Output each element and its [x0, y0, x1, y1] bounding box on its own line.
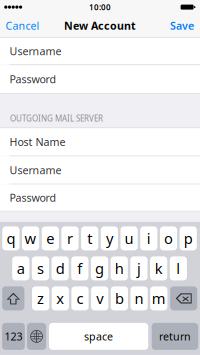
staticText: t — [87, 229, 92, 248]
button[interactable]: o — [160, 226, 177, 250]
staticText: p — [184, 229, 193, 248]
staticText: Username — [9, 44, 61, 58]
button[interactable]: Save — [164, 15, 200, 37]
staticText: i — [147, 229, 151, 248]
staticText: Host Name — [9, 135, 65, 149]
staticText: d — [56, 259, 65, 278]
button[interactable]: h — [111, 256, 128, 280]
button[interactable]: Delete — [170, 286, 197, 310]
button[interactable]: l — [170, 256, 187, 280]
button[interactable]: q — [2, 226, 19, 250]
staticText: j — [137, 259, 141, 278]
staticText: e — [46, 229, 54, 248]
button[interactable]: space — [49, 323, 148, 350]
button[interactable]: g — [91, 256, 108, 280]
button[interactable]: return — [152, 323, 198, 350]
staticText: h — [115, 259, 124, 278]
button[interactable]: e — [42, 226, 59, 250]
button[interactable]: 123 — [2, 323, 25, 350]
button[interactable]: t — [81, 226, 98, 250]
staticText: m — [152, 289, 166, 308]
button[interactable]: Cancel — [0, 15, 45, 37]
staticText: q — [6, 229, 15, 248]
button[interactable]: w — [22, 226, 39, 250]
staticText: 123 — [4, 329, 22, 343]
button[interactable]: y — [101, 226, 118, 250]
button[interactable]: c — [71, 286, 89, 310]
staticText: a — [17, 259, 25, 278]
staticText: r — [67, 229, 73, 248]
button[interactable]: Password — [0, 184, 200, 211]
button[interactable]: Next keyboard — [27, 323, 46, 350]
button[interactable]: z — [32, 286, 49, 310]
staticText: s — [37, 259, 44, 278]
staticText: Password — [9, 191, 56, 205]
button[interactable]: a — [12, 256, 29, 280]
button[interactable]: Shift — [2, 286, 24, 310]
staticText: o — [164, 229, 173, 248]
staticText: k — [155, 259, 163, 278]
staticText: Save — [170, 18, 194, 33]
button[interactable]: Password — [0, 65, 200, 93]
staticText: Username — [9, 163, 61, 177]
button[interactable]: k — [150, 256, 167, 280]
staticText: g — [95, 259, 104, 278]
staticText: return — [159, 329, 191, 343]
button[interactable]: Host Name — [0, 128, 200, 156]
button[interactable]: b — [111, 286, 128, 310]
button[interactable]: f — [71, 256, 88, 280]
button[interactable]: u — [120, 226, 138, 250]
button[interactable]: r — [61, 226, 79, 250]
staticText: 10:00 — [89, 2, 111, 12]
staticText: f — [77, 259, 82, 278]
staticText: b — [115, 289, 124, 308]
button[interactable]: x — [52, 286, 69, 310]
staticText: space — [84, 329, 113, 343]
button[interactable]: p — [180, 226, 197, 250]
button[interactable]: n — [130, 286, 148, 310]
staticText: n — [135, 289, 144, 308]
staticText: OUTGOING MAIL SERVER — [10, 113, 103, 124]
button[interactable]: j — [130, 256, 147, 280]
button[interactable]: v — [91, 286, 108, 310]
staticText: w — [25, 229, 37, 248]
button[interactable]: i — [140, 226, 157, 250]
staticText: u — [125, 229, 134, 248]
staticText: l — [176, 259, 180, 278]
button[interactable]: m — [150, 286, 167, 310]
staticText: y — [106, 229, 113, 248]
staticText: New Account — [64, 18, 136, 33]
staticText: x — [56, 289, 64, 308]
button[interactable]: Username — [0, 156, 200, 184]
staticText: c — [76, 289, 83, 308]
button[interactable]: s — [32, 256, 49, 280]
staticText: Cancel — [5, 18, 39, 33]
staticText: Password — [9, 72, 56, 86]
staticText: z — [37, 289, 44, 308]
button[interactable]: Username — [0, 38, 200, 65]
button[interactable]: d — [51, 256, 69, 280]
staticText: v — [96, 289, 103, 308]
